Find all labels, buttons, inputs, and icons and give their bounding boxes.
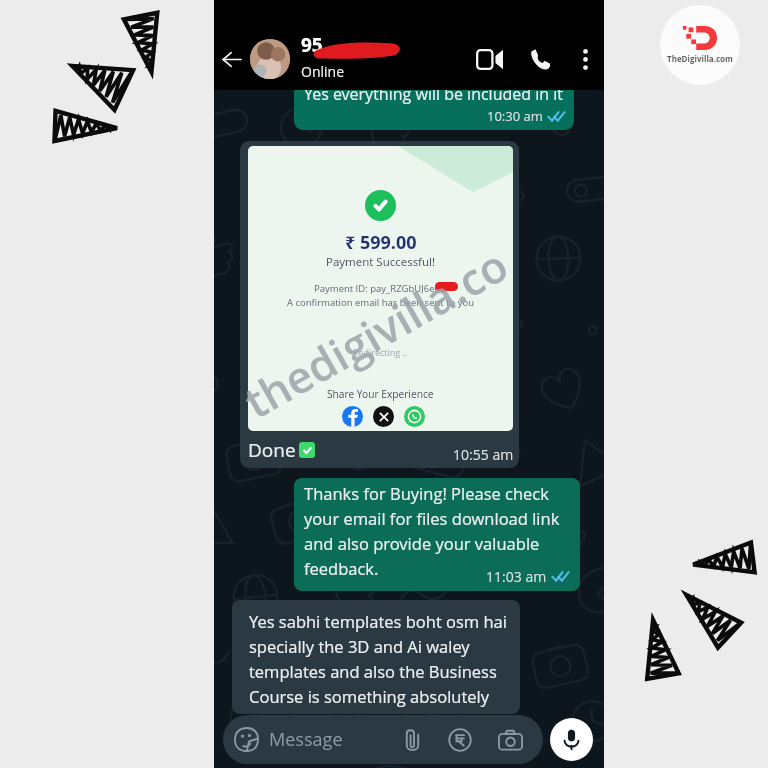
staticText: Done	[248, 437, 296, 463]
button[interactable]: Share on X	[373, 406, 394, 427]
button[interactable]: Video call	[466, 42, 513, 76]
button[interactable]: Thanks for Buying! Please check your ema…	[294, 478, 580, 591]
button[interactable]: ₹ 599.00	[240, 141, 519, 468]
staticText: Yes sabhi templates boht osm hai special…	[249, 610, 507, 708]
staticText: TheDigivilla.com	[667, 53, 733, 64]
staticText: Payment Successful!	[326, 254, 436, 270]
button[interactable]: Contact photo	[250, 39, 290, 79]
staticText: A confirmation email has been sent to yo…	[287, 296, 475, 309]
staticText: Online	[301, 62, 345, 81]
staticText: Payment ID: pay_RZGbUJ6eod	[314, 282, 447, 295]
staticText: Message	[269, 727, 343, 752]
button[interactable]: Record voice message	[550, 718, 593, 761]
staticText: 10:55 am	[453, 445, 514, 464]
button[interactable]: Share on Facebook	[342, 406, 363, 427]
button[interactable]: Back	[218, 41, 246, 77]
staticText: 95	[301, 32, 323, 58]
staticText: Thanks for Buying! Please check your ema…	[304, 482, 560, 580]
staticText: 11:03 am	[486, 567, 547, 586]
button[interactable]: Yes everything will be included in it	[294, 83, 574, 130]
button[interactable]: Message	[223, 715, 543, 764]
button[interactable]: More options	[568, 41, 602, 77]
staticText: Redirecting ..	[353, 346, 408, 358]
button[interactable]: Voice call	[519, 42, 563, 76]
staticText: Yes everything will be included in it	[304, 83, 563, 105]
staticText: Share Your Experience	[327, 387, 434, 401]
staticText: 10:30 am	[487, 107, 543, 125]
button[interactable]: Share on WhatsApp	[404, 406, 425, 427]
staticText: ₹ 599.00	[345, 230, 417, 255]
button[interactable]: Yes sabhi templates boht osm hai special…	[232, 600, 520, 714]
